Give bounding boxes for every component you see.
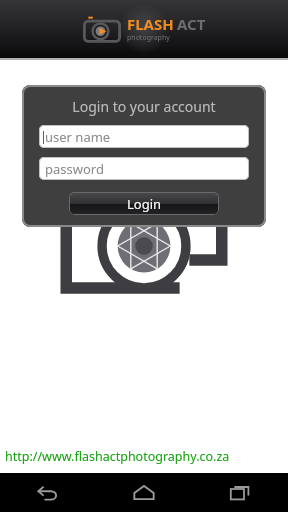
staticText: user name bbox=[45, 128, 111, 146]
staticText: Login to your account bbox=[72, 97, 216, 116]
staticText: photography bbox=[127, 33, 170, 43]
staticText: ACT bbox=[177, 14, 206, 34]
staticText: FLASH bbox=[127, 14, 174, 34]
button[interactable]: Home bbox=[96, 473, 192, 512]
button[interactable]: user name bbox=[39, 125, 249, 148]
button[interactable]: Login bbox=[69, 192, 219, 215]
button[interactable]: Recent apps bbox=[192, 473, 288, 512]
staticText: Login bbox=[127, 195, 162, 213]
button[interactable]: password bbox=[39, 157, 249, 180]
staticText: password bbox=[45, 160, 104, 178]
staticText: http://www.flashactphotography.co.za bbox=[5, 448, 230, 465]
button[interactable]: http://www.flashactphotography.co.za bbox=[0, 445, 288, 467]
button[interactable]: Back bbox=[0, 473, 96, 512]
